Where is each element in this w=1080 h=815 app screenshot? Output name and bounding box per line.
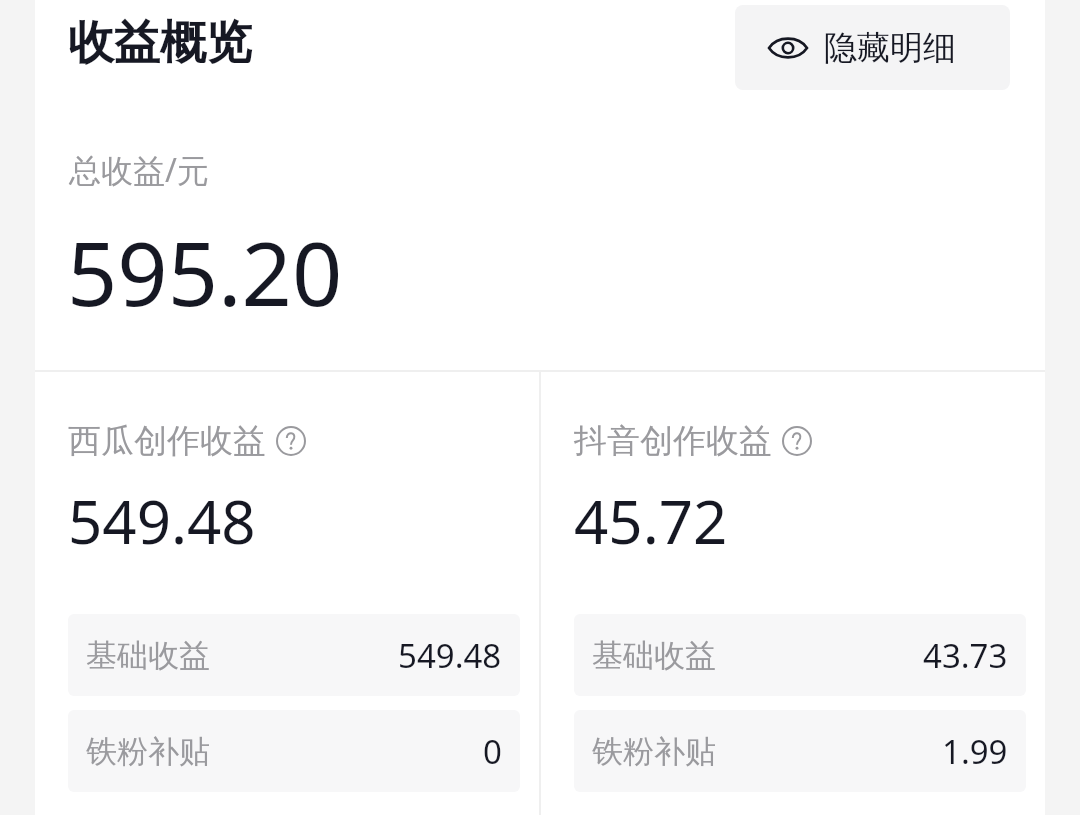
staticText: 铁粉补贴 [86, 732, 210, 771]
button[interactable]: 铁粉补贴 [68, 710, 520, 792]
staticText: 铁粉补贴 [592, 732, 716, 771]
staticText: 收益概览 [68, 14, 252, 72]
staticText: 43.73 [923, 633, 1008, 678]
staticText: 549.48 [68, 480, 256, 562]
staticText: 基础收益 [592, 636, 716, 675]
button[interactable]: 基础收益 [574, 614, 1026, 696]
staticText: 45.72 [574, 480, 728, 562]
staticText: 总收益/元 [69, 148, 209, 192]
button[interactable]: 隐藏明细 [735, 5, 1010, 90]
button[interactable]: 说明 [780, 424, 814, 458]
staticText: 基础收益 [86, 636, 210, 675]
button[interactable]: 铁粉补贴 [574, 710, 1026, 792]
staticText: 549.48 [398, 633, 502, 678]
button[interactable]: 说明 [274, 424, 308, 458]
staticText: 西瓜创作收益 [68, 420, 266, 462]
staticText: 隐藏明细 [824, 27, 956, 69]
button[interactable]: 基础收益 [68, 614, 520, 696]
staticText: 1.99 [942, 729, 1008, 774]
staticText: 0 [483, 729, 502, 774]
staticText: 抖音创作收益 [574, 420, 772, 462]
staticText: 595.20 [67, 212, 343, 332]
